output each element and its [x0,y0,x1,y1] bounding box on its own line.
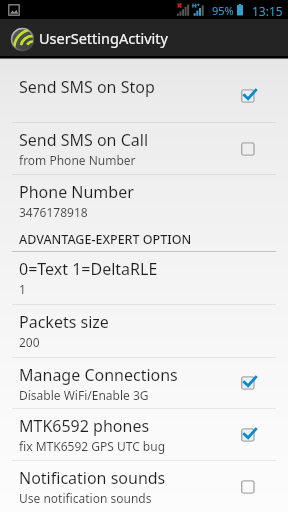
button[interactable]: Send SMS on Call [0,123,288,174]
staticText: fix MTK6592 GPS UTC bug [19,438,166,454]
staticText: 3476178918 [19,204,88,220]
staticText: Use notification sounds [19,490,152,506]
button[interactable]: Phone Number [0,175,288,226]
staticText: ADVANTAGE-EXPERT OPTION [19,231,192,248]
staticText: 13:15 [252,3,283,19]
button[interactable]: Notification sounds [0,461,288,512]
staticText: 0=Text 1=DeltaRLE [19,258,158,280]
button[interactable]: MTK6592 phones [0,409,288,460]
staticText: from Phone Number [19,152,136,168]
staticText: 200 [19,334,40,350]
button[interactable]: Manage Connections [0,358,288,408]
staticText: Manage Connections [19,364,178,386]
staticText: Send SMS on Stop [19,76,155,98]
staticText: 95% [212,3,234,18]
staticText: Disable WiFi/Enable 3G [19,387,149,403]
staticText: 1 [19,281,26,297]
staticText: Packets size [19,311,109,333]
button[interactable]: 0=Text 1=DeltaRLE [0,252,288,304]
staticText: Send SMS on Call [19,129,149,151]
staticText: MTK6592 phones [19,415,150,437]
staticText: UserSettingActivity [39,28,168,48]
staticText: Notification sounds [19,467,166,489]
button[interactable]: Send SMS on Stop [0,58,288,122]
staticText: Phone Number [19,181,134,203]
button[interactable]: Packets size [0,305,288,357]
